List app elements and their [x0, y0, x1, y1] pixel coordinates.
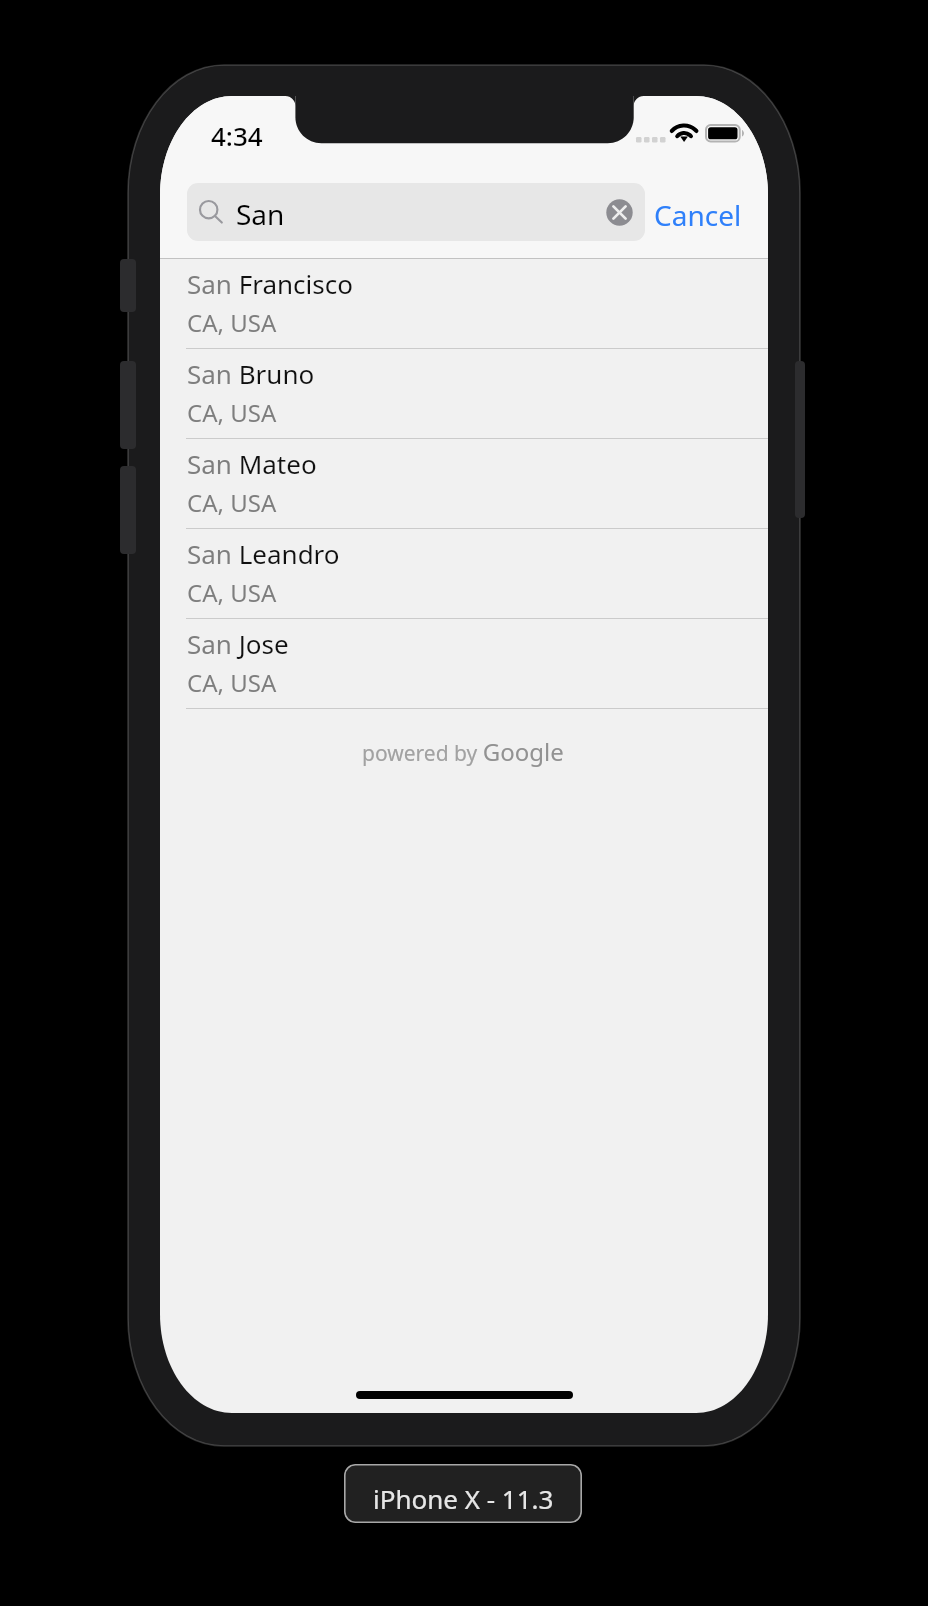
staticText: CA, USA — [187, 576, 277, 609]
other: Home indicator — [356, 1391, 573, 1399]
button[interactable]: iPhone X - 11.3 — [344, 1464, 582, 1523]
button[interactable]: San Mateo — [160, 439, 768, 528]
staticText: San Bruno — [187, 356, 315, 391]
staticText: iPhone X - 11.3 — [373, 1481, 554, 1516]
staticText: San Mateo — [187, 446, 317, 481]
staticText: CA, USA — [187, 666, 277, 699]
button[interactable]: San — [187, 183, 645, 241]
staticText: San Jose — [187, 626, 289, 661]
staticText: powered by Google — [362, 735, 564, 768]
staticText: 4:34 — [211, 118, 263, 153]
staticText: CA, USA — [187, 486, 277, 519]
staticText: San — [236, 195, 285, 233]
button[interactable]: Cancel — [648, 183, 742, 241]
button[interactable]: San Francisco — [160, 259, 768, 348]
staticText: CA, USA — [187, 396, 277, 429]
staticText: CA, USA — [187, 306, 277, 339]
button[interactable]: San Leandro — [160, 529, 768, 618]
staticText: Cancel — [654, 196, 742, 234]
button[interactable]: San Bruno — [160, 349, 768, 438]
staticText: San Leandro — [187, 536, 340, 571]
button[interactable]: San Jose — [160, 619, 768, 708]
button[interactable]: Clear search text — [605, 198, 634, 227]
staticText: San Francisco — [187, 266, 353, 301]
